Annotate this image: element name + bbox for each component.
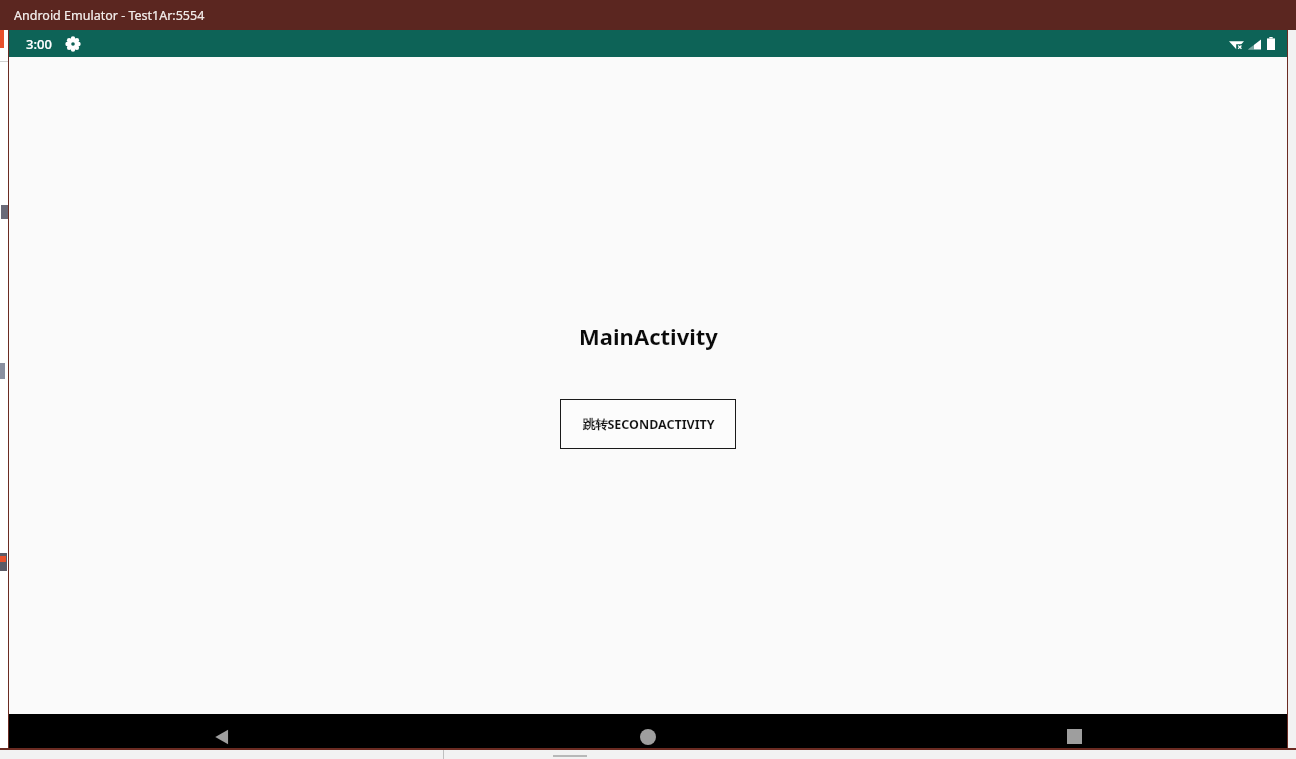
other: Settings (66, 37, 80, 51)
button[interactable]: Home (435, 714, 861, 759)
staticText: Android Emulator - Test1Ar:5554 (14, 7, 205, 24)
staticText: 跳转SECONDACTIVITY (582, 416, 715, 433)
button[interactable]: 跳转SECONDACTIVITY (560, 399, 736, 449)
button[interactable]: Recent apps (861, 714, 1287, 759)
staticText: MainActivity (579, 321, 718, 351)
button[interactable]: Back (9, 714, 435, 759)
staticText: 3:00 (26, 35, 52, 53)
